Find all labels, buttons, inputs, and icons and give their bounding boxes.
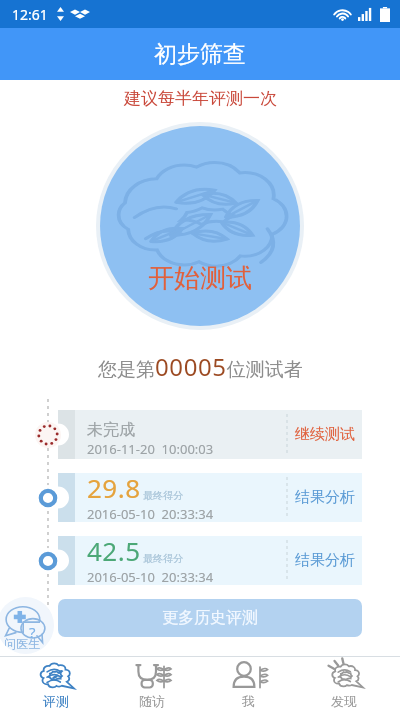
button[interactable]: 未完成 xyxy=(58,410,362,459)
staticText: ? xyxy=(29,622,36,642)
staticText: 更多历史评测 xyxy=(162,608,258,628)
button[interactable]: 29.8 xyxy=(58,473,362,522)
staticText: 2016-05-10 20:33:34 xyxy=(87,568,214,582)
staticText: 继续测试 xyxy=(295,425,355,444)
button[interactable]: 随访 xyxy=(104,657,200,711)
staticText: 初步筛查 xyxy=(154,40,246,69)
staticText: 2016-05-10 20:33:34 xyxy=(87,505,214,519)
button[interactable]: 评测 xyxy=(8,657,104,711)
button[interactable]: ? xyxy=(0,597,54,654)
staticText: 2016-11-20 10:00:03 xyxy=(87,440,214,458)
staticText: 结果分析 xyxy=(295,488,355,507)
staticText: 未完成 xyxy=(87,420,135,440)
staticText: 42.5 xyxy=(87,533,141,568)
staticText: 结果分析 xyxy=(295,551,355,570)
staticText: 评测 xyxy=(43,693,69,709)
staticText: 29.8 xyxy=(87,470,141,505)
staticText: 问医生 xyxy=(4,636,40,651)
button[interactable]: 发现 xyxy=(296,657,392,711)
staticText: 您是第00005位测试者 xyxy=(98,350,303,383)
staticText: 开始测试 xyxy=(148,262,252,295)
staticText: 随访 xyxy=(139,693,165,709)
button[interactable]: 我 xyxy=(200,657,296,711)
staticText: 我 xyxy=(242,693,255,709)
button[interactable]: 更多历史评测 xyxy=(58,599,362,637)
staticText: 最终得分 xyxy=(143,489,183,502)
staticText: 最终得分 xyxy=(143,552,183,565)
staticText: 建议每半年评测一次 xyxy=(124,88,277,109)
button[interactable]: 42.5 xyxy=(58,536,362,585)
button[interactable]: 开始测试 xyxy=(96,122,304,330)
staticText: 发现 xyxy=(331,693,357,709)
staticText: 12:61 xyxy=(12,5,48,24)
